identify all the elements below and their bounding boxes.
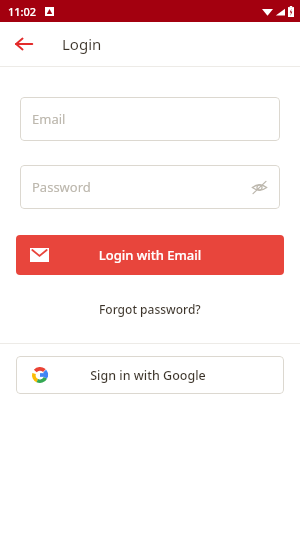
staticText: Email — [32, 110, 66, 128]
button[interactable]: Forgot password? — [91, 297, 209, 321]
button[interactable]: Login with Email — [16, 235, 284, 275]
staticText: Forgot password? — [99, 301, 201, 317]
staticText: Password — [32, 178, 91, 196]
staticText: Sign in with Google — [48, 367, 248, 384]
button[interactable]: Sign in with Google — [16, 356, 284, 394]
button[interactable]: Password — [20, 165, 280, 209]
staticText: Login — [62, 34, 102, 54]
button[interactable]: Toggle password visibility — [248, 176, 270, 198]
button[interactable]: Email — [20, 97, 280, 141]
staticText: 11:02 — [8, 4, 37, 19]
button[interactable]: Back — [10, 30, 38, 58]
staticText: Login with Email — [49, 246, 251, 264]
